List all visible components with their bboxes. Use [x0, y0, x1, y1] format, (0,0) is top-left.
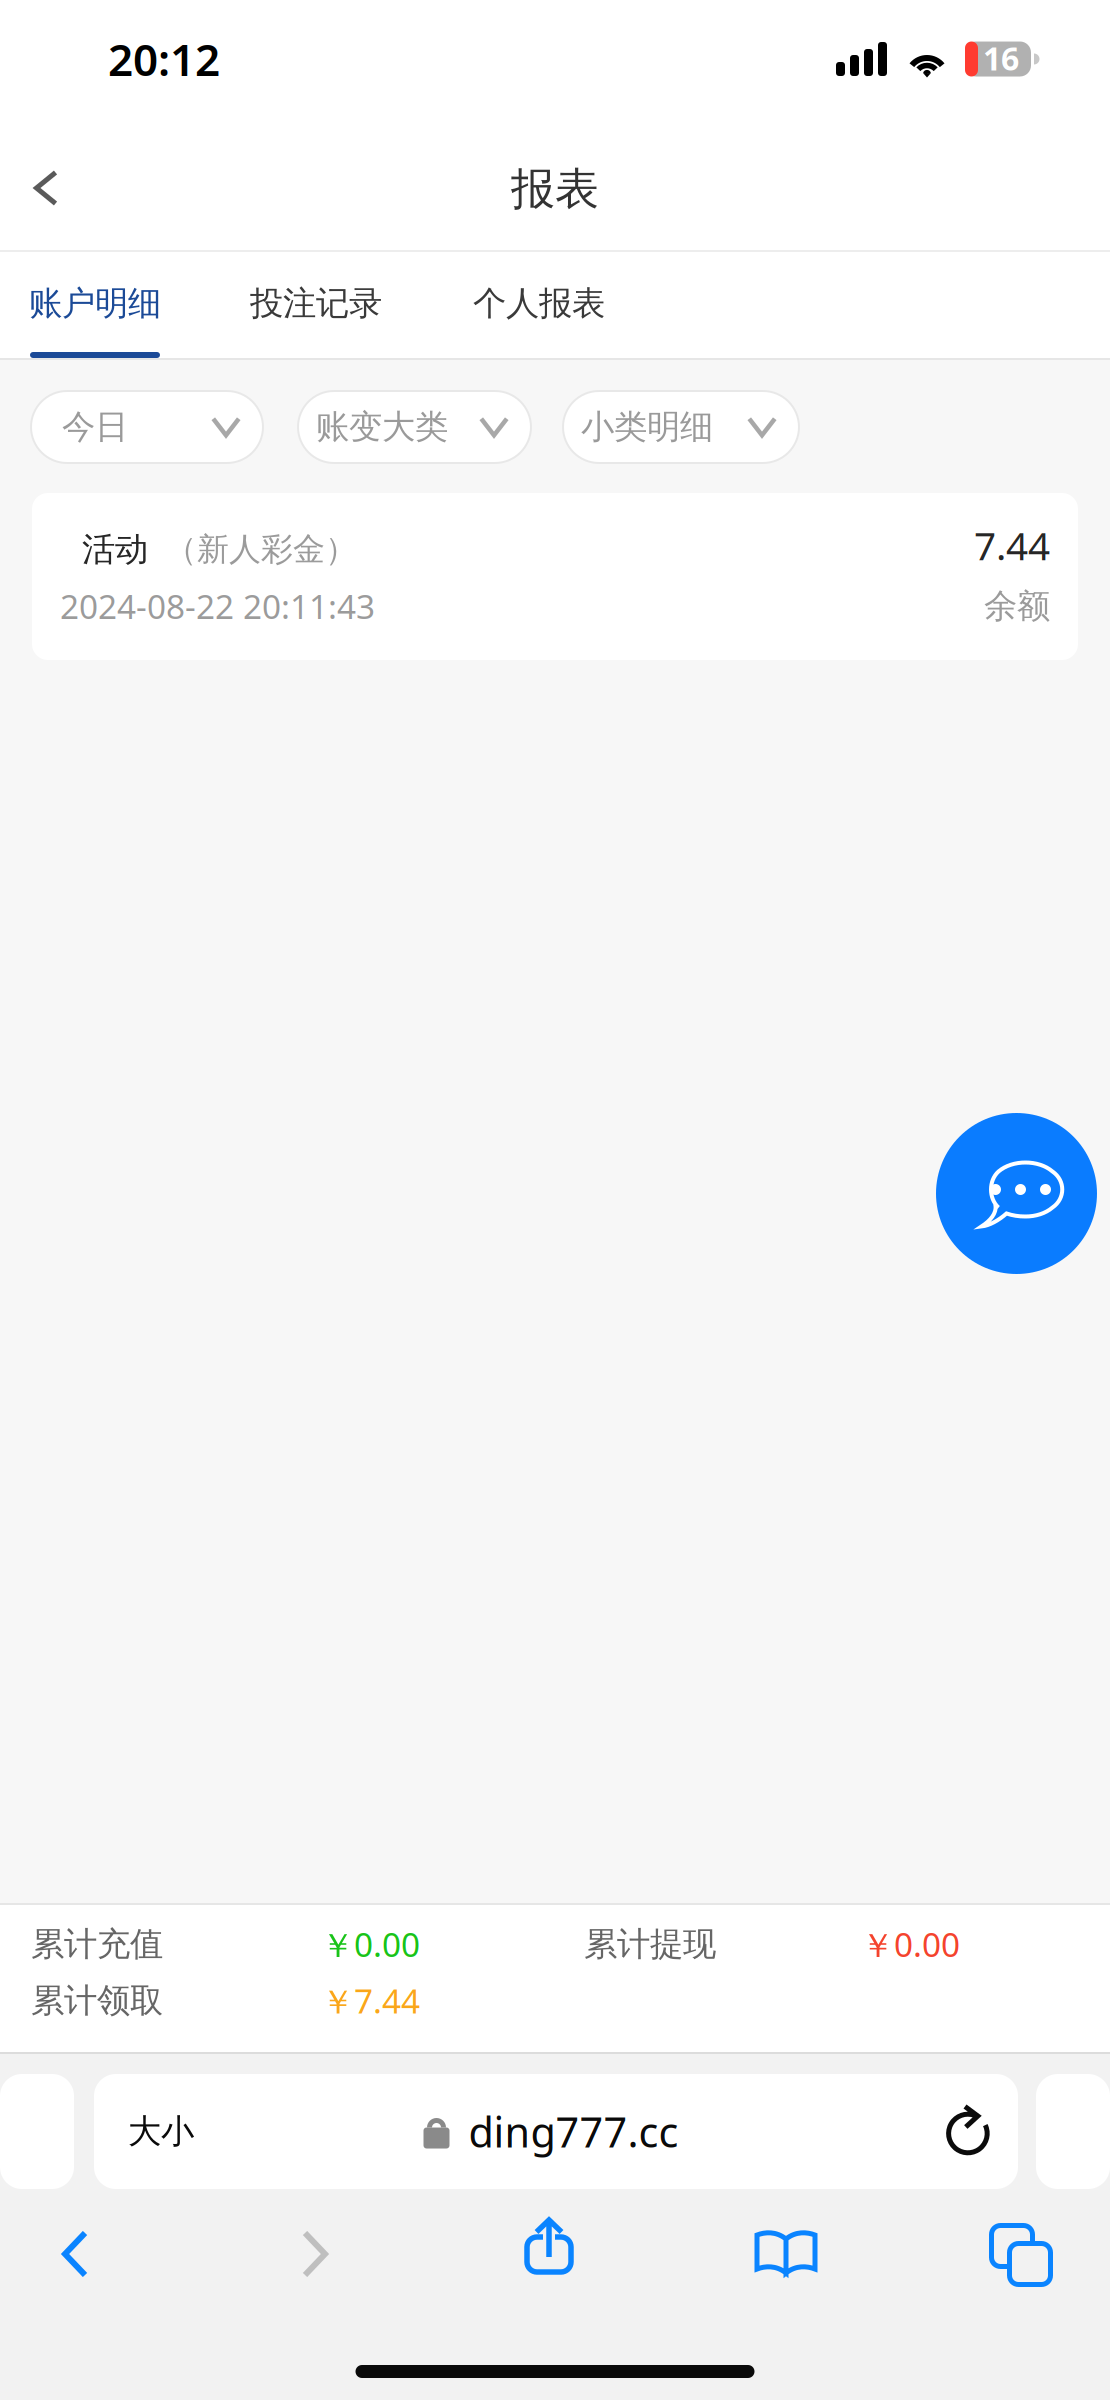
staticText: 20:12 [108, 30, 220, 88]
button[interactable]: 账户明细 [29, 252, 161, 358]
staticText: （新人彩金） [165, 530, 357, 569]
staticText: 投注记录 [250, 283, 382, 324]
staticText: 今日 [62, 406, 128, 447]
staticText: 累计提现 [584, 1924, 716, 1965]
staticText: 大小 [128, 2111, 194, 2152]
button[interactable]: 小类明细 [563, 391, 799, 463]
staticText: ￥0.00 [861, 1922, 960, 1966]
button[interactable]: Customer service chat [936, 1113, 1097, 1274]
button[interactable]: 今日 [31, 391, 263, 463]
button[interactable]: Share [475, 2218, 625, 2290]
staticText: 个人报表 [473, 283, 605, 324]
button[interactable]: Tabs [946, 2218, 1096, 2290]
staticText: 累计充值 [31, 1924, 163, 1965]
staticText: 余额 [984, 586, 1050, 627]
button[interactable]: 账变大类 [298, 391, 531, 463]
staticText: 16 [983, 37, 1019, 79]
button[interactable]: 大小 [94, 2074, 1018, 2189]
staticText: 活动 [82, 529, 148, 570]
staticText: 报表 [511, 162, 599, 216]
staticText: 累计领取 [31, 1980, 163, 2021]
staticText: 7.44 [974, 520, 1050, 571]
staticText: ding777.cc [468, 2104, 678, 2159]
button[interactable]: Forward [240, 2218, 390, 2290]
staticText: ￥0.00 [321, 1922, 420, 1966]
staticText: 账户明细 [29, 283, 161, 324]
staticText: 2024-08-22 20:11:43 [60, 584, 375, 628]
button[interactable]: 个人报表 [473, 252, 605, 358]
staticText: 小类明细 [581, 406, 713, 447]
button[interactable]: Back [0, 2218, 150, 2290]
button[interactable]: Bookmarks [711, 2218, 861, 2290]
button[interactable]: Back [0, 118, 92, 252]
staticText: ￥7.44 [321, 1978, 420, 2023]
button[interactable]: 投注记录 [250, 252, 382, 358]
staticText: 账变大类 [316, 406, 448, 447]
